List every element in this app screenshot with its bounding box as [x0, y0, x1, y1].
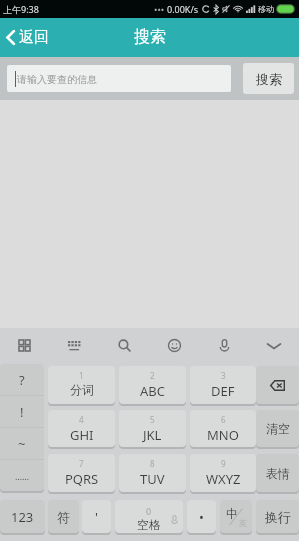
- button[interactable]: 9: [190, 454, 256, 492]
- staticText: 7: [79, 458, 84, 469]
- staticText: 英: [239, 518, 247, 528]
- staticText: 2: [150, 370, 155, 381]
- button[interactable]: 返回: [0, 18, 59, 57]
- button[interactable]: Search: [99, 328, 149, 363]
- staticText: 5: [150, 414, 155, 425]
- button[interactable]: Hide keyboard: [249, 328, 299, 363]
- staticText: 8: [150, 458, 155, 469]
- staticText: •: [199, 508, 204, 526]
- button[interactable]: ~: [0, 428, 44, 459]
- button[interactable]: 5: [119, 410, 186, 447]
- button[interactable]: 搜索: [243, 63, 294, 94]
- button[interactable]: Symbols: [0, 328, 49, 363]
- button[interactable]: •: [187, 500, 216, 533]
- button[interactable]: ': [82, 500, 111, 533]
- staticText: 上午9:38: [3, 3, 39, 15]
- staticText: 0: [146, 505, 152, 517]
- button[interactable]: Voice input: [199, 328, 249, 363]
- button[interactable]: Delete: [256, 366, 299, 404]
- button[interactable]: 换行: [256, 500, 299, 533]
- button[interactable]: 中: [220, 500, 252, 533]
- staticText: 4: [79, 414, 84, 425]
- staticText: 6: [221, 414, 226, 425]
- staticText: •••: [154, 3, 165, 15]
- button[interactable]: 7: [48, 454, 115, 492]
- staticText: 返回: [19, 28, 49, 47]
- staticText: DEF: [211, 382, 235, 400]
- button[interactable]: Emoji: [149, 328, 199, 363]
- staticText: !: [20, 403, 24, 421]
- staticText: ~: [18, 435, 26, 453]
- staticText: ': [95, 508, 98, 526]
- staticText: 3: [221, 370, 226, 381]
- staticText: TUV: [140, 470, 165, 488]
- button[interactable]: 6: [190, 410, 256, 447]
- staticText: ?: [19, 371, 25, 389]
- staticText: ABC: [140, 382, 165, 400]
- button[interactable]: 8: [119, 454, 186, 492]
- staticText: 搜索: [256, 71, 282, 87]
- staticText: ……: [15, 470, 30, 482]
- button[interactable]: 123: [0, 500, 45, 533]
- button[interactable]: Keyboard layout: [49, 328, 99, 363]
- button[interactable]: 符: [48, 500, 79, 533]
- staticText: 123: [11, 508, 34, 526]
- button[interactable]: 2: [119, 366, 186, 404]
- staticText: 清空: [266, 421, 290, 436]
- button[interactable]: 1: [48, 366, 115, 404]
- staticText: 换行: [265, 509, 291, 525]
- button[interactable]: !: [0, 396, 44, 427]
- button[interactable]: ……: [0, 460, 44, 491]
- staticText: 搜索: [134, 27, 166, 47]
- button[interactable]: 3: [190, 366, 256, 404]
- staticText: 表情: [266, 466, 290, 481]
- staticText: WXYZ: [206, 470, 241, 488]
- staticText: 分词: [70, 382, 94, 397]
- staticText: 1: [79, 370, 84, 381]
- staticText: 中: [226, 506, 238, 521]
- staticText: GHI: [70, 426, 94, 444]
- staticText: 符: [57, 509, 70, 525]
- staticText: MNO: [207, 426, 239, 444]
- staticText: 0.00K/s: [167, 3, 199, 15]
- button[interactable]: ?: [0, 364, 44, 395]
- staticText: JKL: [143, 426, 162, 444]
- button[interactable]: 0: [115, 500, 183, 533]
- button[interactable]: 4: [48, 410, 115, 447]
- staticText: 空格: [137, 517, 161, 532]
- button[interactable]: 表情: [256, 454, 299, 492]
- button[interactable]: 清空: [256, 410, 299, 447]
- button[interactable]: 请输入要查的信息: [7, 65, 231, 92]
- staticText: PQRS: [65, 470, 99, 488]
- staticText: 9: [221, 458, 226, 469]
- staticText: 移动: [258, 4, 274, 14]
- staticText: 请输入要查的信息: [17, 73, 97, 86]
